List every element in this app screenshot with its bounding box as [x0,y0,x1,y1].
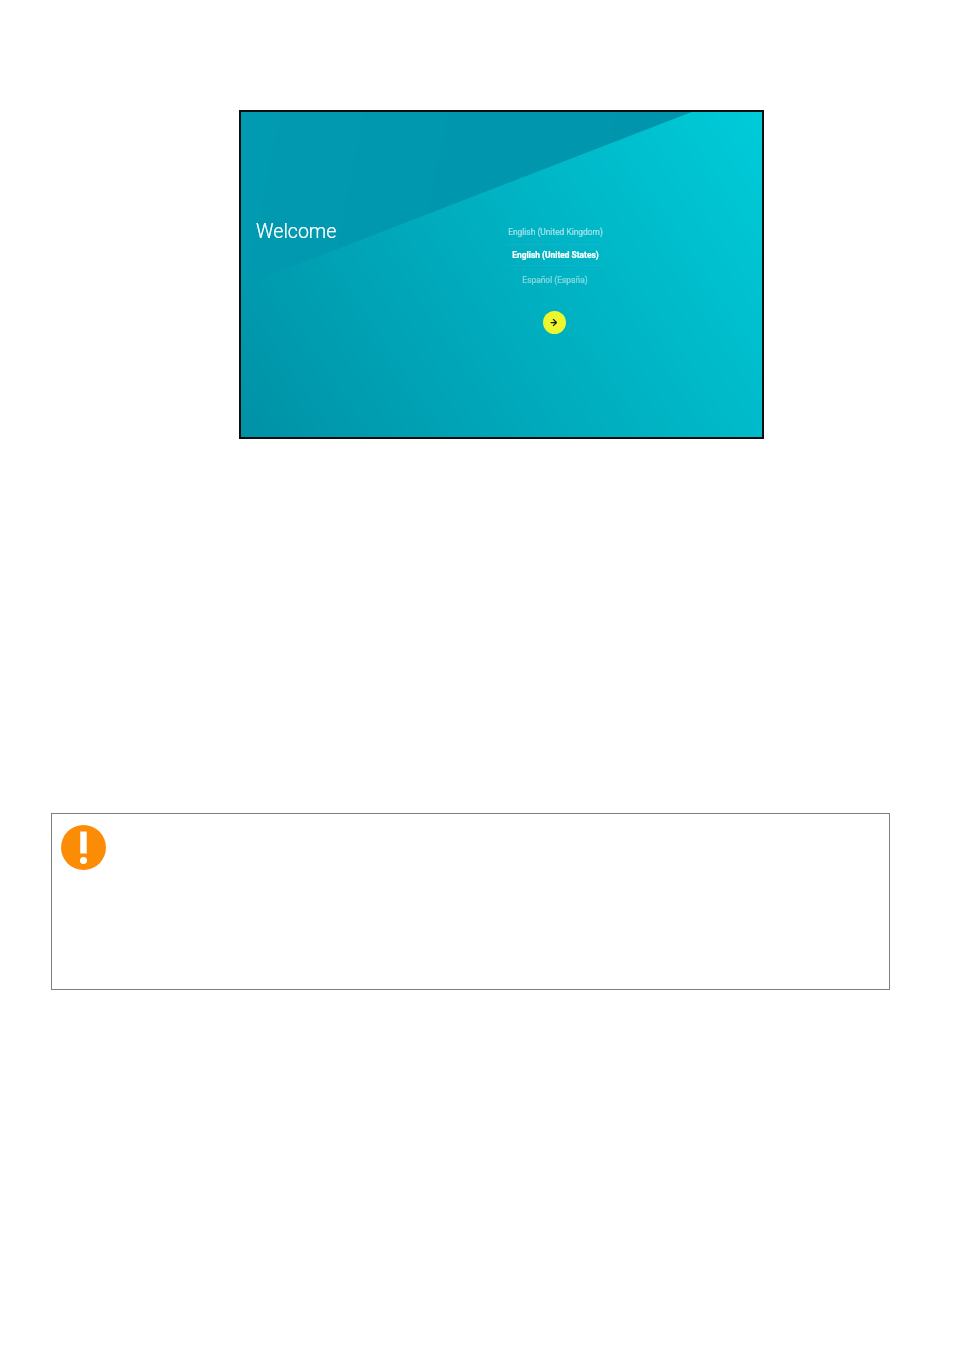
staticText: Español (España) [522,275,588,285]
staticText: English (United States) [512,250,599,260]
staticText: English (United Kingdom) [508,227,603,237]
staticText: Welcome [256,220,337,243]
button[interactable]: English (United Kingdom) [506,227,604,243]
other: Warning [61,825,106,870]
button[interactable]: English (United States) [506,250,604,266]
button[interactable]: Español (España) [506,275,604,291]
button[interactable]: Next [543,311,566,334]
